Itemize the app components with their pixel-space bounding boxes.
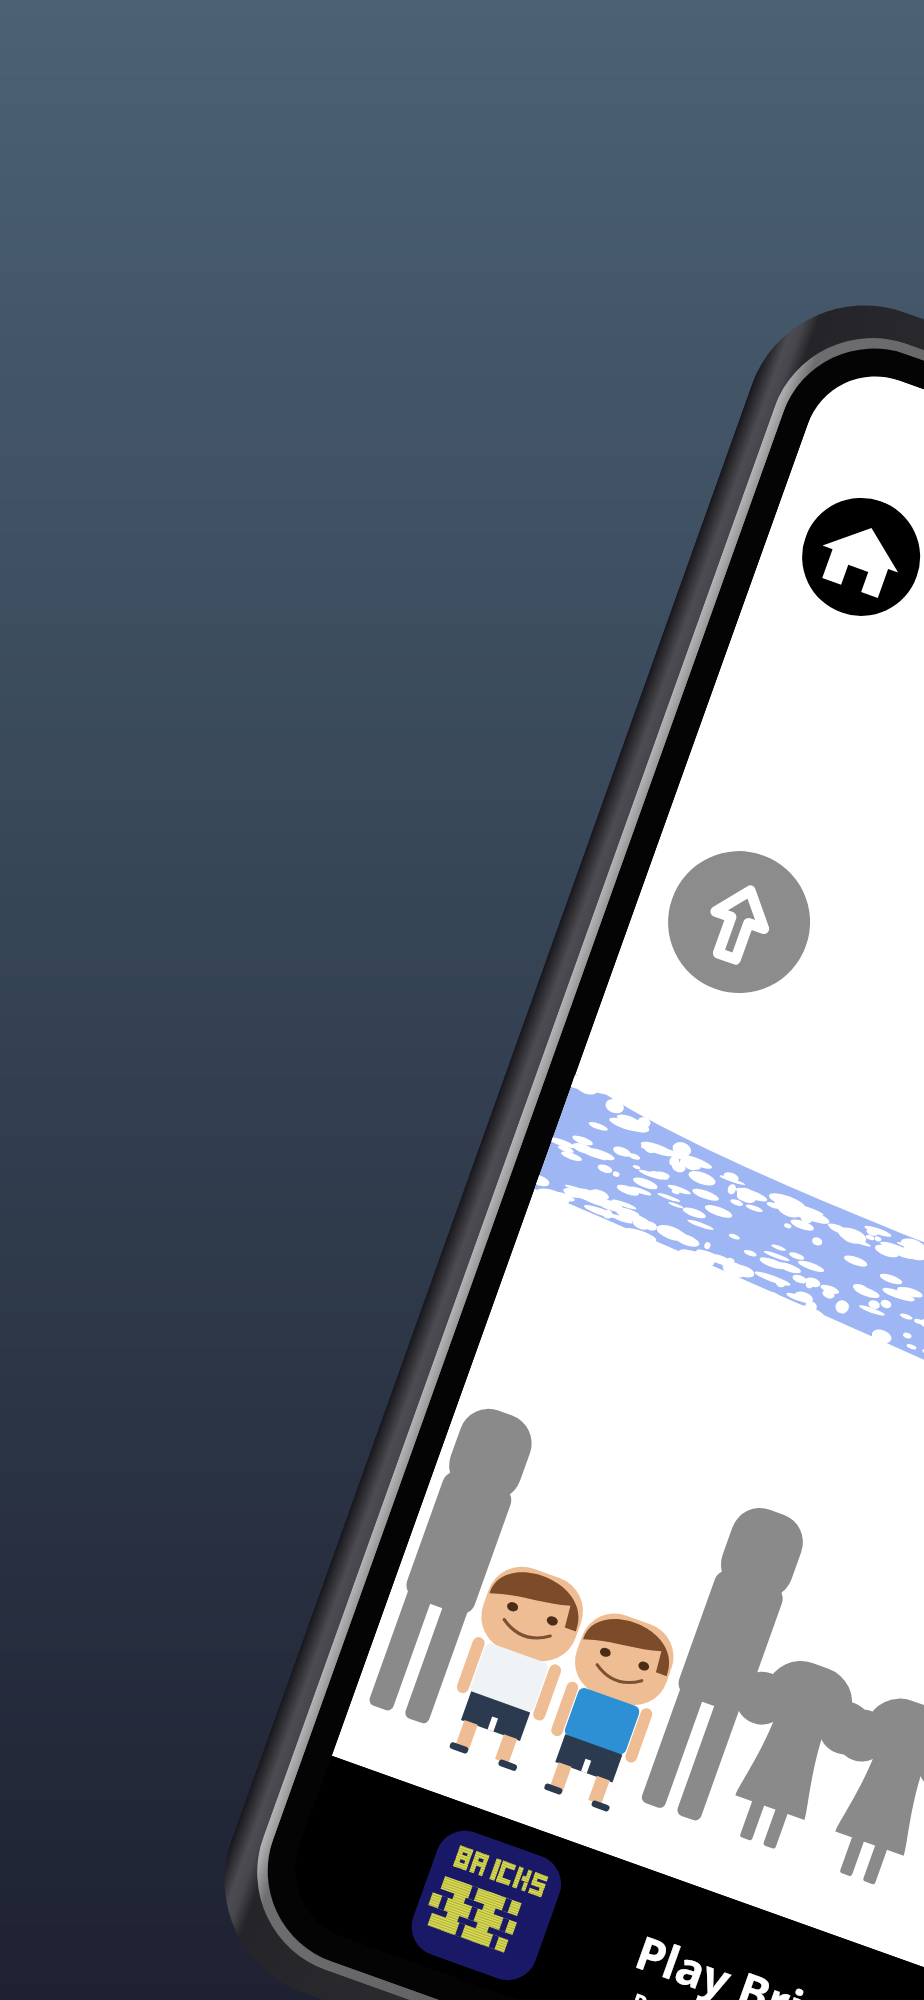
staticText: Play Bricks <box>628 1920 883 2000</box>
button[interactable]: Scroll up <box>648 831 830 1013</box>
staticText: Powered by ads <box>628 1985 799 2000</box>
button[interactable]: Bricks app <box>403 1822 569 1988</box>
button[interactable]: Home <box>786 481 924 632</box>
